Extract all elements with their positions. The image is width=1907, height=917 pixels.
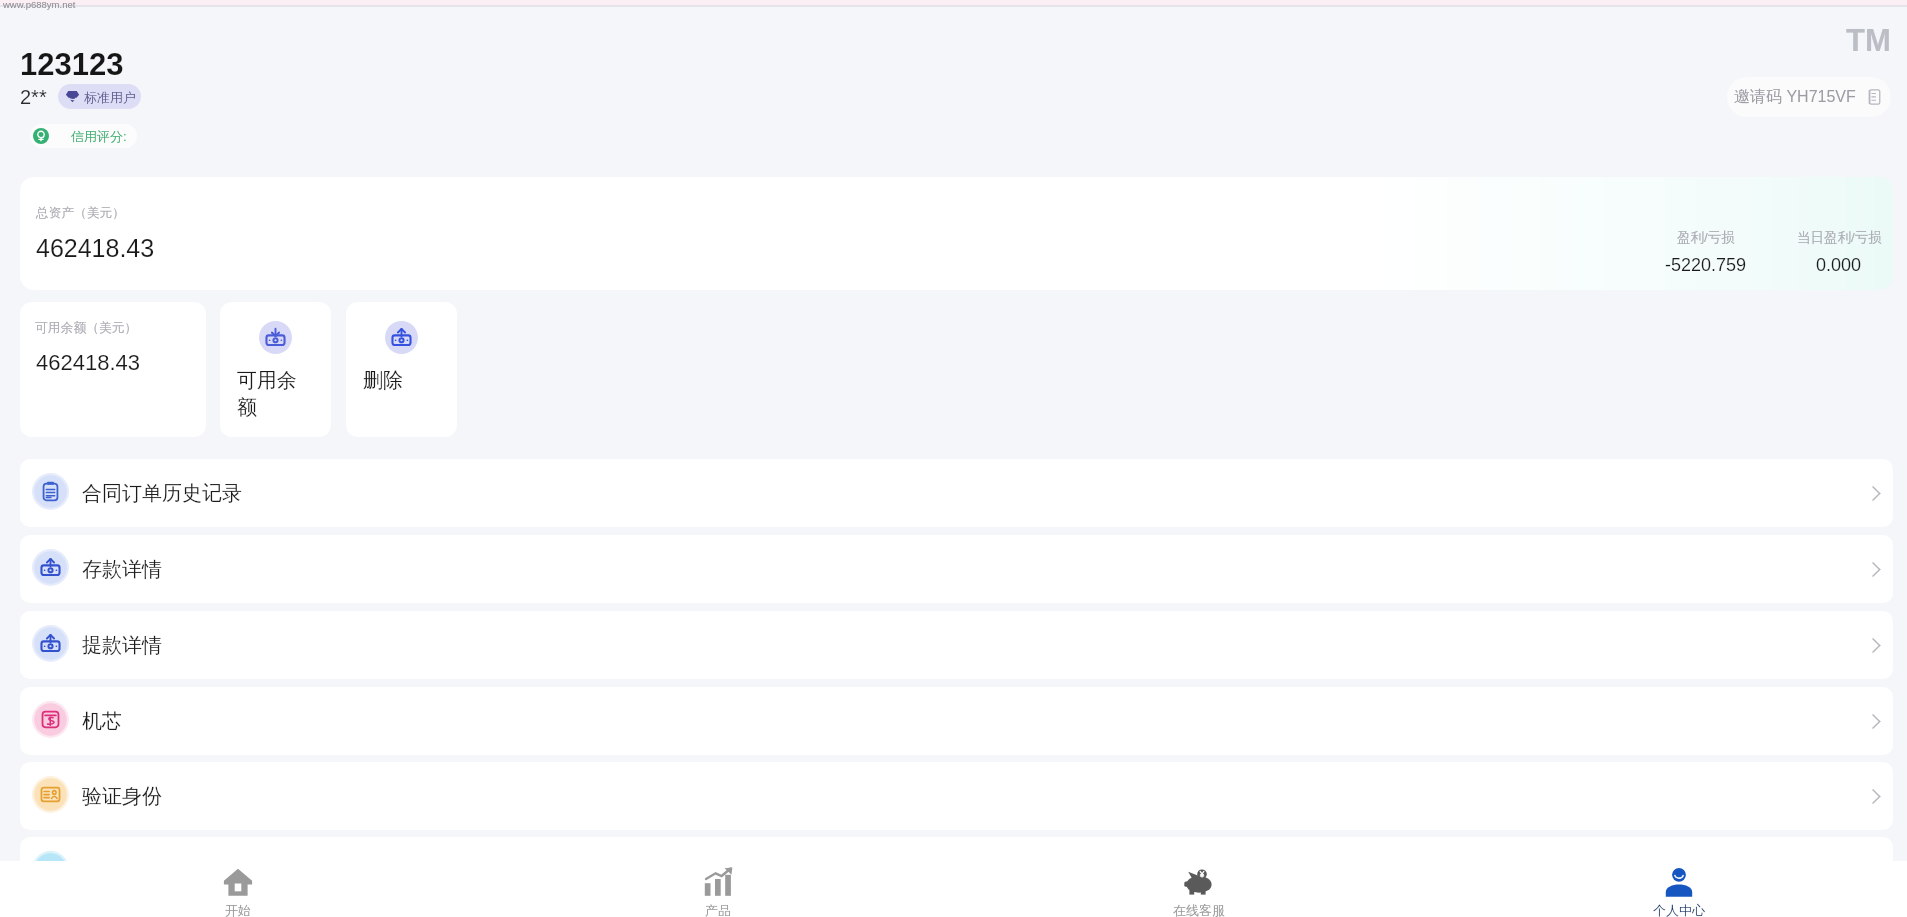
- staticText: 存款详情: [82, 557, 162, 582]
- staticText: 机芯: [82, 709, 122, 734]
- button[interactable]: 存款详情: [20, 535, 1893, 603]
- staticText: 总资产（美元）: [36, 205, 125, 221]
- button[interactable]: 验证身份: [20, 762, 1893, 830]
- button[interactable]: 产品: [658, 861, 778, 917]
- staticText: 123123: [20, 47, 124, 82]
- button[interactable]: 证件验证: [20, 837, 1893, 905]
- staticText: 验证身份: [82, 784, 162, 809]
- staticText: 开始: [225, 902, 251, 917]
- button[interactable]: 可用余 额: [220, 302, 331, 437]
- staticText: 当日盈利/亏损: [1797, 229, 1882, 246]
- button[interactable]: 机芯: [20, 687, 1893, 755]
- staticText: 盈利/亏损: [1677, 229, 1735, 246]
- button[interactable]: 标准用户: [58, 84, 141, 109]
- button[interactable]: 邀请码 YH715VF: [1727, 77, 1891, 117]
- staticText: 合同订单历史记录: [82, 481, 242, 506]
- button[interactable]: 总资产（美元）: [20, 177, 1893, 290]
- staticText: 个人中心: [1653, 902, 1705, 917]
- staticText: 提款详情: [82, 633, 162, 658]
- button[interactable]: 开始: [178, 861, 298, 917]
- staticText: 在线客服: [1173, 902, 1225, 917]
- staticText: 可用余 额: [237, 368, 297, 420]
- staticText: 2**: [20, 86, 47, 108]
- staticText: 462418.43: [36, 234, 155, 262]
- button[interactable]: 可用余额（美元）: [20, 302, 206, 437]
- staticText: www.p688ym.net: [3, 0, 76, 10]
- staticText: 可用余额（美元）: [35, 320, 138, 336]
- staticText: -5220.759: [1665, 255, 1747, 275]
- staticText: 邀请码 YH715VF: [1734, 87, 1856, 107]
- staticText: 删除: [363, 368, 403, 393]
- staticText: 标准用户: [84, 89, 136, 105]
- button[interactable]: 合同订单历史记录: [20, 459, 1893, 527]
- staticText: 462418.43: [36, 350, 140, 375]
- button[interactable]: 个人中心: [1619, 861, 1739, 917]
- button[interactable]: 提款详情: [20, 611, 1893, 679]
- button[interactable]: 在线客服: [1139, 861, 1259, 917]
- button[interactable]: 删除: [346, 302, 457, 437]
- staticText: 0.000: [1816, 255, 1862, 275]
- button[interactable]: 信用评分:: [30, 124, 137, 148]
- other: Copy invite code: [1866, 89, 1882, 105]
- staticText: 产品: [705, 902, 731, 917]
- staticText: TM: [1846, 23, 1891, 58]
- staticText: 信用评分:: [71, 128, 127, 144]
